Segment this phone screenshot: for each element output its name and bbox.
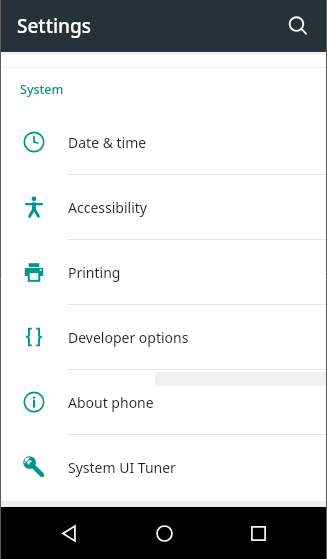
button[interactable]: Date & time <box>0 110 327 174</box>
staticText: Accessibility <box>68 198 147 217</box>
staticText: Printing <box>68 263 121 282</box>
staticText: System <box>20 81 64 98</box>
staticText: About phone <box>68 393 154 412</box>
button[interactable]: Back <box>43 507 95 559</box>
button[interactable]: About phone <box>0 370 327 434</box>
button[interactable]: Printing <box>0 240 327 304</box>
button[interactable]: System UI Tuner <box>0 435 327 499</box>
button[interactable]: Home <box>138 507 190 559</box>
button[interactable]: Recent apps <box>232 507 284 559</box>
button[interactable]: Accessibility <box>0 175 327 239</box>
staticText: System UI Tuner <box>68 458 176 477</box>
button[interactable]: Search <box>278 6 318 46</box>
button[interactable]: Developer options <box>0 305 327 369</box>
staticText: Developer options <box>68 328 189 347</box>
staticText: Date & time <box>68 133 147 152</box>
staticText: Settings <box>17 13 91 39</box>
